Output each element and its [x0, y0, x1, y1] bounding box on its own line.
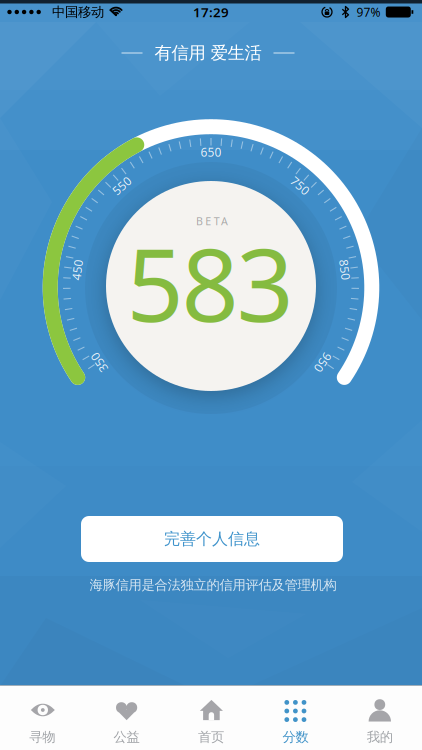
staticText: 850 — [334, 262, 355, 278]
button[interactable]: 我的 — [338, 686, 422, 750]
staticText: 583 — [126, 217, 293, 349]
staticText: 海豚信用是合法独立的信用评估及管理机构 — [89, 577, 336, 593]
button[interactable]: 寻物 — [0, 686, 84, 750]
staticText: 中国移动 — [52, 4, 104, 20]
staticText: 17:29 — [193, 3, 229, 21]
staticText: 97% — [356, 4, 380, 20]
staticText: 我的 — [367, 729, 393, 745]
button[interactable]: 首页 — [169, 686, 253, 750]
staticText: 寻物 — [29, 729, 55, 745]
staticText: 550 — [111, 178, 132, 194]
staticText: 650 — [200, 144, 221, 160]
button[interactable]: 完善个人信息 — [81, 516, 343, 562]
staticText: 有信用 爱生活 — [154, 42, 261, 64]
staticText: 完善个人信息 — [164, 529, 260, 549]
staticText: 450 — [67, 262, 88, 278]
staticText: 950 — [312, 354, 333, 370]
staticText: 首页 — [198, 729, 224, 745]
button[interactable]: 公益 — [85, 686, 169, 750]
button[interactable]: 分数 — [253, 686, 337, 750]
staticText: BETA — [196, 214, 228, 228]
staticText: 分数 — [282, 729, 308, 745]
staticText: 公益 — [114, 729, 140, 745]
staticText: 750 — [290, 178, 311, 194]
staticText: 350 — [89, 354, 110, 370]
